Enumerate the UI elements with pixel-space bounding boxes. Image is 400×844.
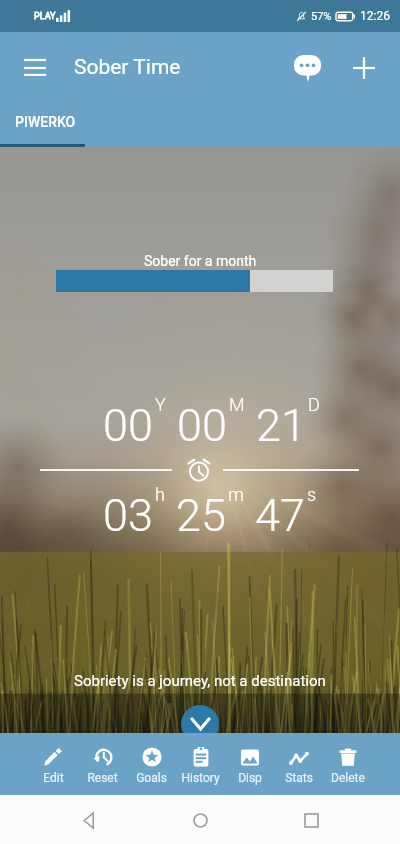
staticText: 25	[176, 489, 226, 542]
staticText: History	[181, 771, 220, 785]
button[interactable]: Edit	[28, 733, 78, 795]
button[interactable]: Home	[178, 798, 222, 842]
staticText: 12:26	[360, 9, 390, 23]
staticText: s	[307, 484, 317, 505]
staticText: PLAY	[34, 11, 56, 22]
staticText: Stats	[285, 771, 313, 785]
button[interactable]: Menu	[18, 51, 52, 85]
staticText: M	[229, 394, 245, 415]
staticText: 21	[256, 399, 306, 452]
button[interactable]: Disp	[225, 733, 274, 795]
staticText: h	[155, 484, 165, 505]
button[interactable]: Reset	[78, 733, 127, 795]
staticText: 57%	[311, 10, 332, 23]
button[interactable]: PIWERKO	[0, 103, 85, 147]
button[interactable]: Stats	[274, 733, 323, 795]
button[interactable]: Back	[67, 798, 111, 842]
staticText: Disp	[238, 771, 262, 785]
staticText: 03	[103, 489, 153, 542]
button[interactable]: Recents	[289, 798, 333, 842]
staticText: Sober Time	[74, 55, 181, 80]
button[interactable]: Delete	[323, 733, 372, 795]
staticText: 00	[177, 399, 227, 452]
staticText: 47	[255, 489, 305, 542]
staticText: Edit	[43, 771, 64, 785]
staticText: m	[228, 484, 244, 505]
staticText: 00	[103, 399, 153, 452]
staticText: D	[308, 394, 320, 415]
button[interactable]: Add	[346, 50, 382, 86]
staticText: Goals	[136, 771, 167, 785]
staticText: Sober for a month	[144, 253, 257, 269]
staticText: Reset	[87, 771, 118, 785]
button[interactable]: Expand	[181, 705, 219, 743]
staticText: Y	[155, 394, 166, 415]
staticText: Delete	[331, 771, 365, 785]
staticText: PIWERKO	[15, 114, 76, 130]
button[interactable]: Sobriety progress	[56, 270, 333, 292]
staticText: Sobriety is a journey, not a destination	[74, 672, 326, 690]
button[interactable]: Goals	[127, 733, 176, 795]
button[interactable]: Chat	[288, 49, 326, 87]
button[interactable]: History	[176, 733, 225, 795]
